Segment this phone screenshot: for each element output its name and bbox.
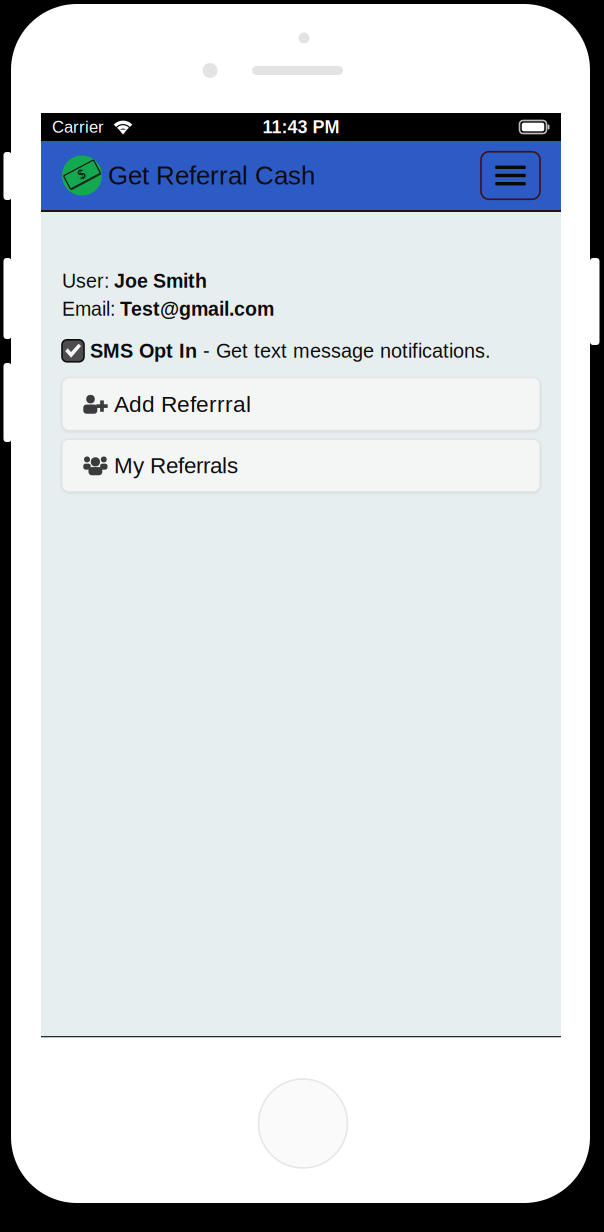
- button[interactable]: My Referrals: [62, 439, 540, 492]
- staticText: Email:: [62, 298, 120, 320]
- staticText: - Get text message notifications.: [197, 340, 491, 362]
- staticText: User:: [62, 270, 114, 292]
- button[interactable]: SMS Opt In: [62, 336, 540, 366]
- button[interactable]: Add Referrral: [62, 378, 540, 430]
- staticText: Joe Smith: [114, 270, 207, 292]
- staticText: My Referrals: [114, 453, 238, 478]
- staticText: Add Referrral: [114, 391, 251, 417]
- staticText: SMS Opt In: [90, 340, 197, 362]
- staticText: Test@gmail.com: [120, 298, 274, 320]
- staticText: Carrier: [52, 118, 104, 136]
- button[interactable]: Menu: [481, 152, 540, 199]
- staticText: Get Referral Cash: [108, 161, 315, 190]
- staticText: $: [78, 168, 85, 181]
- staticText: 11:43 PM: [262, 117, 339, 137]
